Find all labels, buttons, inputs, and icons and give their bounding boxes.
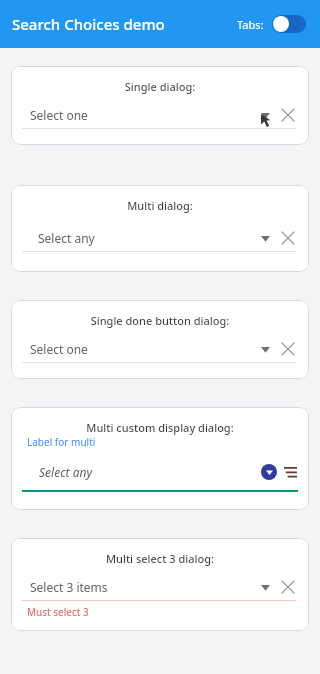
staticText: Select any xyxy=(39,464,93,480)
button[interactable]: Select 3 items xyxy=(20,574,300,601)
other: Open dropdown xyxy=(256,229,274,247)
other: Open dropdown xyxy=(256,340,274,358)
button[interactable]: Single done button dialog: xyxy=(11,300,309,379)
button[interactable]: Single dialog: xyxy=(11,66,309,145)
staticText: Single done button dialog: xyxy=(11,313,309,328)
staticText: Label for multi xyxy=(27,435,96,449)
staticText: Search Choices demo xyxy=(12,14,165,34)
staticText: Select any xyxy=(38,230,95,246)
button[interactable]: Select one xyxy=(20,336,300,363)
staticText: Multi custom display dialog: xyxy=(11,420,309,435)
staticText: Select 3 items xyxy=(30,579,108,595)
other: Open dropdown xyxy=(256,578,274,596)
button[interactable]: Multi select 3 dialog: xyxy=(11,538,309,631)
other: Clear xyxy=(279,340,297,358)
staticText: Select one xyxy=(30,107,88,123)
staticText: Multi select 3 dialog: xyxy=(11,551,309,566)
staticText: Must select 3 xyxy=(27,605,89,619)
other: Open dropdown xyxy=(256,106,274,124)
button[interactable]: Select one xyxy=(20,102,300,129)
other: Sort options xyxy=(282,464,298,480)
staticText: Single dialog: xyxy=(11,79,309,94)
staticText: Multi dialog: xyxy=(11,198,309,213)
button[interactable]: Multi custom display dialog: xyxy=(11,407,309,510)
button[interactable]: Select any xyxy=(20,459,300,492)
staticText: Select one xyxy=(30,341,88,357)
button[interactable]: Toggle tabs xyxy=(272,15,306,33)
other: Clear xyxy=(279,229,297,247)
button[interactable]: Multi dialog: xyxy=(11,185,309,272)
other: Clear xyxy=(279,106,297,124)
other: Open dropdown xyxy=(261,464,277,480)
other: Clear xyxy=(279,578,297,596)
button[interactable]: Select any xyxy=(20,225,300,252)
staticText: Tabs: xyxy=(237,17,264,32)
